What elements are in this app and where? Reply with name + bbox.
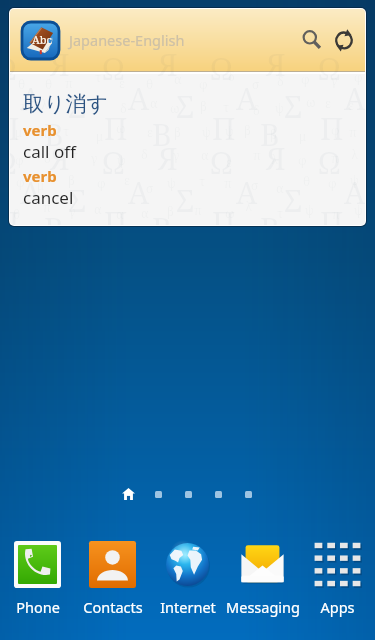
staticText: A [20,172,42,213]
staticText: δ [44,150,51,166]
staticText: Ω [10,48,17,89]
button[interactable] [233,484,263,504]
button[interactable]: Apps [300,541,375,617]
staticText: ω [225,205,235,221]
staticText: θ [13,206,21,222]
staticText: Я [266,138,286,179]
staticText: Π [212,202,236,225]
staticText: Π [10,202,20,225]
staticText: ε [226,154,232,170]
staticText: Π [320,202,344,225]
button[interactable]: Home screen [113,484,143,504]
staticText: θ [91,99,99,115]
staticText: λ [41,96,48,112]
staticText: τ [95,69,102,85]
staticText: ψ [225,123,234,139]
button[interactable]: Abc [10,9,365,71]
staticText: Σ [68,180,87,221]
staticText: Σ [68,86,87,127]
staticText: 取り消す [23,91,108,117]
staticText: μ [37,177,45,193]
staticText: verb [23,166,57,186]
staticText: λ [271,151,278,167]
staticText: τ [72,147,79,163]
staticText: Π [212,108,236,149]
staticText: Ω [102,48,125,89]
staticText: φ [301,71,310,87]
staticText: call off [23,140,76,163]
staticText: Abc [32,32,52,47]
staticText: Ω [102,142,125,183]
staticText: Я [50,138,70,179]
button[interactable]: Contacts [75,541,150,617]
button[interactable] [143,484,173,504]
button[interactable]: Internet [150,541,225,617]
staticText: B [260,114,280,155]
staticText: cancel [23,186,74,209]
button[interactable] [203,484,233,504]
staticText: Я [158,44,178,85]
staticText: β [270,126,277,142]
staticText: φ [16,174,25,190]
button[interactable]: Messaging [225,541,300,617]
staticText: π [332,206,340,222]
staticText: α [116,206,124,222]
staticText: γ [69,203,76,219]
staticText: Π [104,202,128,225]
staticText: Я [50,44,70,85]
button[interactable] [173,484,203,504]
button[interactable]: Search [292,20,332,60]
staticText: γ [331,72,338,88]
button[interactable]: Phone [0,541,75,617]
staticText: Ω [318,48,341,89]
staticText: Messaging [226,597,300,617]
staticText: Phone [16,597,60,617]
staticText: Я [266,44,286,85]
button[interactable]: Refresh [324,20,364,60]
staticText: Я [158,138,178,179]
